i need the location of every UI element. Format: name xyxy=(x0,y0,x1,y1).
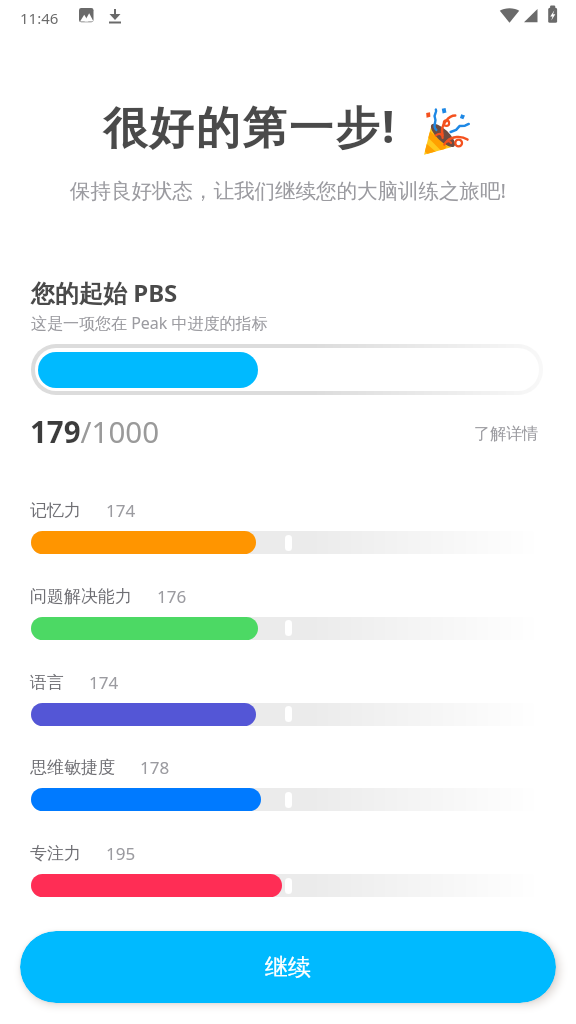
staticText: 了解详情 xyxy=(474,424,538,444)
staticText: 记忆力 xyxy=(30,500,81,521)
button[interactable]: 继续 xyxy=(20,931,556,1003)
staticText: 保持良好状态，让我们继续您的大脑训练之旅吧! xyxy=(0,176,576,204)
staticText: 专注力 xyxy=(30,843,81,864)
staticText: 您的起始 PBS xyxy=(31,276,178,309)
button[interactable]: 了解详情 xyxy=(474,424,538,444)
staticText: 继续 xyxy=(265,953,311,982)
staticText: 179/1000 xyxy=(30,411,160,451)
staticText: 问题解决能力 xyxy=(30,586,132,607)
staticText: 很好的第一步! xyxy=(103,96,397,156)
staticText: 11:46 xyxy=(20,8,59,28)
staticText: 178 xyxy=(140,756,170,779)
staticText: 176 xyxy=(157,585,187,608)
staticText: 174 xyxy=(89,671,119,694)
staticText: 语言 xyxy=(30,672,64,693)
staticText: 这是一项您在 Peak 中进度的指标 xyxy=(31,312,268,334)
staticText: 174 xyxy=(106,499,136,522)
staticText: 195 xyxy=(106,842,136,865)
staticText: 思维敏捷度 xyxy=(30,757,115,778)
